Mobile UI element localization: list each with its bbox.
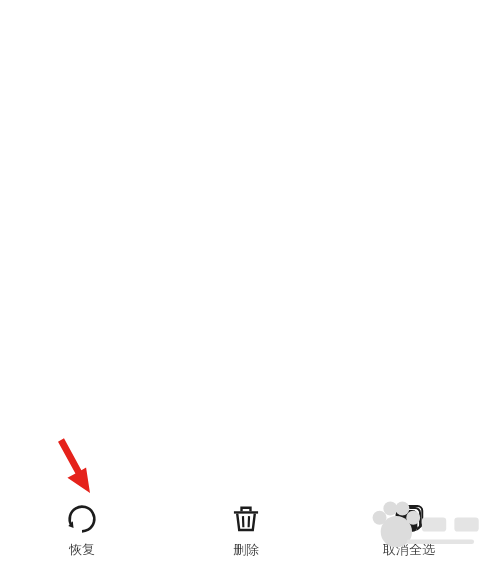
button[interactable]: 取消全选 <box>327 497 490 565</box>
button[interactable]: 删除 <box>164 497 327 565</box>
staticText: 取消全选 <box>383 541 435 557</box>
staticText: 删除 <box>233 541 259 557</box>
button[interactable]: 恢复 <box>0 497 164 565</box>
staticText: 恢复 <box>69 541 95 557</box>
